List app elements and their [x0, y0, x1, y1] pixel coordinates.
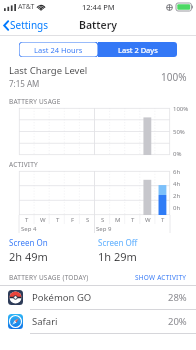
staticText: T	[25, 216, 29, 224]
staticText: Last Charge Level	[9, 64, 88, 77]
staticText: BATTERY USAGE	[9, 97, 61, 106]
staticText: 2h 49m	[9, 249, 48, 264]
staticText: AT&T	[18, 2, 35, 12]
staticText: 0%	[173, 150, 182, 158]
staticText: Last 2 Days	[118, 45, 158, 55]
staticText: 50%	[173, 128, 185, 136]
staticText: 20%	[168, 315, 187, 328]
button[interactable]: Safari	[0, 310, 196, 333]
staticText: 100%	[161, 70, 187, 84]
staticText: Last 24 Hours	[34, 45, 83, 55]
other: Safari	[8, 314, 23, 329]
staticText: 7:15 AM	[9, 78, 40, 89]
staticText: S	[101, 216, 105, 224]
staticText: Settings	[10, 18, 49, 32]
staticText: W	[145, 216, 151, 224]
staticText: 28%	[168, 291, 187, 304]
staticText: 100%	[173, 105, 189, 113]
staticText: 6h	[173, 168, 181, 176]
staticText: Sep 9	[96, 225, 112, 233]
other: Pokémon GO	[8, 290, 23, 305]
staticText: Safari	[32, 315, 168, 328]
button[interactable]: Pokémon GO	[0, 286, 196, 309]
staticText: SHOW ACTIVITY	[135, 273, 187, 282]
staticText: 0h	[173, 204, 181, 212]
staticText: S	[86, 216, 90, 224]
staticText: M	[115, 216, 121, 224]
staticText: 12:44 PM	[82, 2, 115, 12]
button[interactable]: SHOW ACTIVITY	[135, 273, 187, 282]
staticText: T	[56, 216, 60, 224]
staticText: T	[161, 216, 165, 224]
staticText: ACTIVITY	[9, 160, 38, 169]
staticText: F	[71, 216, 75, 224]
staticText: BATTERY USAGE (TODAY)	[9, 273, 135, 282]
staticText: Screen Off	[98, 237, 138, 248]
staticText: Battery	[79, 18, 118, 32]
staticText: 1h 29m	[98, 249, 137, 264]
staticText: Sep 4	[21, 225, 37, 233]
staticText: 4h	[173, 180, 181, 188]
button[interactable]: Settings	[0, 15, 55, 35]
staticText: Screen On	[9, 237, 48, 248]
staticText: Pokémon GO	[32, 291, 168, 304]
staticText: W	[40, 216, 46, 224]
staticText: T	[131, 216, 135, 224]
button[interactable]: Last 2 Days	[98, 42, 177, 57]
button[interactable]: Last 24 Hours	[19, 42, 98, 57]
staticText: 2h	[173, 192, 181, 200]
